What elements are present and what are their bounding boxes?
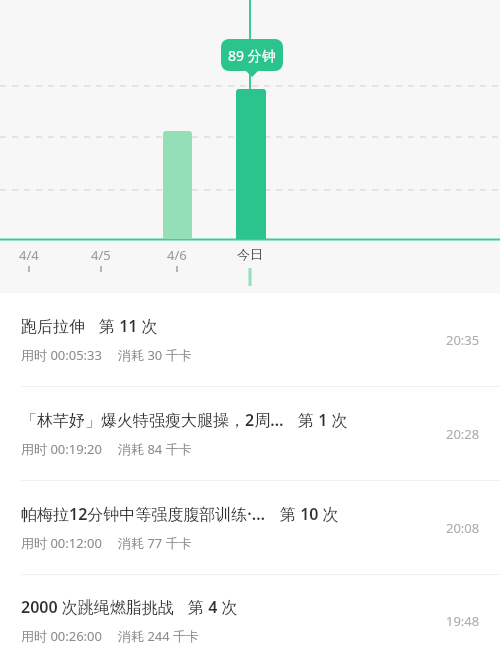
staticText: 用时 00:12:00 <box>21 534 102 552</box>
staticText: 4/6 <box>167 246 187 264</box>
staticText: 20:28 <box>446 425 480 443</box>
button[interactable]: 帕梅拉12分钟中等强度腹部训练·… <box>0 481 500 574</box>
button[interactable]: 2000 次跳绳燃脂挑战 <box>0 575 500 666</box>
staticText: 20:08 <box>446 519 480 537</box>
staticText: 第 1 次 <box>298 409 348 431</box>
staticText: 跑后拉伸 <box>21 317 85 337</box>
staticText: 用时 00:05:33 <box>21 346 102 364</box>
staticText: 89 分钟 <box>228 46 276 65</box>
staticText: 第 4 次 <box>188 596 238 618</box>
button[interactable]: 89 分钟 <box>221 39 283 71</box>
staticText: 20:35 <box>446 331 480 349</box>
staticText: 消耗 244 千卡 <box>118 627 200 645</box>
staticText: 用时 00:19:20 <box>21 440 102 458</box>
staticText: 第 11 次 <box>99 315 158 337</box>
staticText: 帕梅拉12分钟中等强度腹部训练·… <box>21 503 266 525</box>
staticText: 19:48 <box>446 612 480 630</box>
staticText: 消耗 84 千卡 <box>118 440 192 458</box>
staticText: 第 10 次 <box>280 503 339 525</box>
staticText: 2000 次跳绳燃脂挑战 <box>21 596 174 618</box>
staticText: 用时 00:26:00 <box>21 627 102 645</box>
button[interactable] <box>236 89 266 239</box>
staticText: 今日 <box>237 246 263 262</box>
button[interactable]: 「林芊妤」爆火特强瘦大腿操，2周… <box>0 387 500 480</box>
staticText: 4/4 <box>19 246 39 264</box>
staticText: 消耗 30 千卡 <box>118 346 192 364</box>
button[interactable]: 跑后拉伸 <box>0 293 500 386</box>
staticText: 4/5 <box>91 246 111 264</box>
staticText: 「林芊妤」爆火特强瘦大腿操，2周… <box>21 409 284 431</box>
staticText: 消耗 77 千卡 <box>118 534 192 552</box>
